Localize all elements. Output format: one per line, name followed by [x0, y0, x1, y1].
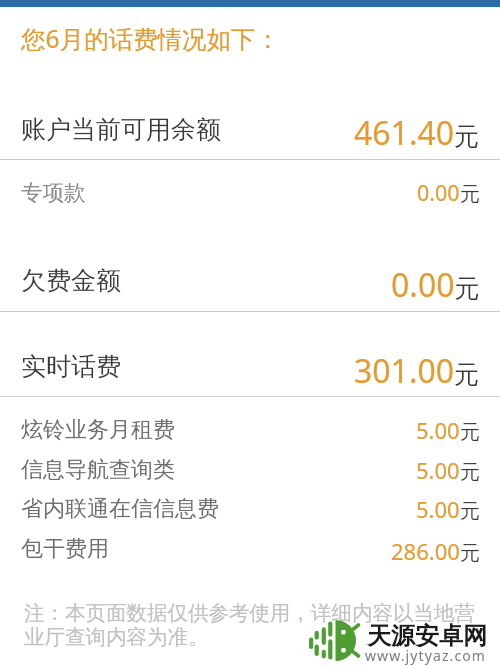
staticText: 注：本页面数据仅供参考使用，详细内容以当地营 业厅查询内容为准。	[24, 600, 475, 650]
staticText: 省内联通在信信息费	[21, 495, 219, 523]
button[interactable]: 信息导航查询类	[0, 450, 500, 490]
button[interactable]: 省内联通在信信息费	[0, 489, 500, 529]
staticText: 461.40元	[354, 111, 480, 155]
staticText: 286.00元	[391, 536, 480, 566]
staticText: 炫铃业务月租费	[21, 416, 175, 444]
staticText: 实时话费	[21, 351, 121, 382]
staticText: 5.00元	[416, 494, 480, 524]
staticText: 账户当前可用余额	[21, 114, 221, 145]
button[interactable]: 实时话费	[0, 338, 500, 394]
staticText: 301.00元	[354, 349, 480, 393]
button[interactable]: 欠费金额	[0, 252, 500, 308]
staticText: 0.00元	[391, 263, 480, 307]
staticText: 5.00元	[416, 415, 480, 445]
button[interactable]: 账户当前可用余额	[0, 101, 500, 157]
button[interactable]: 包干费用	[0, 529, 500, 569]
staticText: 专项款	[21, 179, 86, 206]
staticText: 天源安卓网	[367, 621, 487, 651]
staticText: 5.00元	[416, 455, 480, 485]
staticText: 包干费用	[21, 535, 109, 563]
button[interactable]: 炫铃业务月租费	[0, 410, 500, 450]
staticText: 0.00元	[417, 178, 480, 207]
staticText: 您6月的话费情况如下：	[21, 22, 281, 54]
staticText: www.jytyaz.com	[365, 646, 487, 665]
staticText: 信息导航查询类	[21, 456, 175, 484]
button[interactable]: 专项款	[0, 170, 500, 214]
staticText: 欠费金额	[21, 265, 121, 296]
